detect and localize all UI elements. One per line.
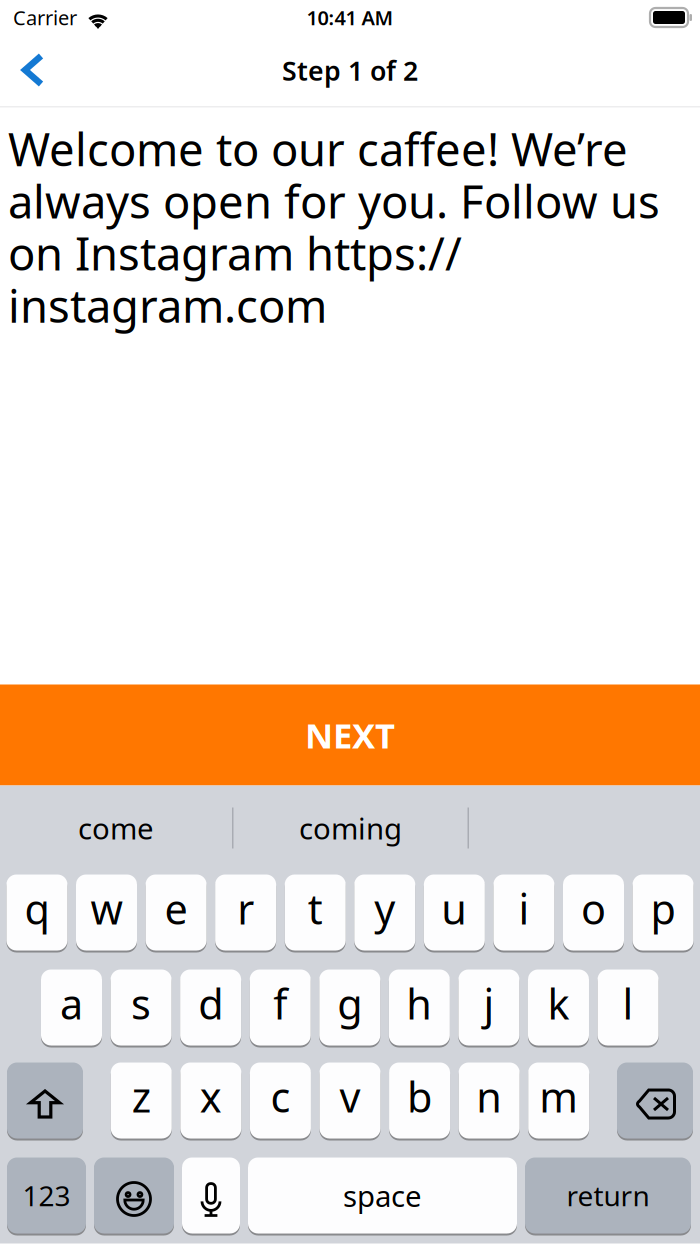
staticText: z — [132, 1069, 151, 1124]
button[interactable]: NEXT — [0, 684, 700, 785]
button[interactable]: coming — [233, 785, 467, 870]
staticText: i — [518, 881, 529, 936]
staticText: space — [343, 1176, 422, 1215]
button[interactable]: u — [424, 874, 485, 952]
button[interactable]: y — [354, 874, 415, 952]
button[interactable]: g — [319, 969, 380, 1047]
button[interactable]: come — [0, 785, 232, 870]
staticText: r — [237, 881, 254, 936]
staticText: u — [441, 881, 467, 936]
staticText: d — [198, 976, 223, 1031]
button[interactable]: i — [493, 874, 554, 952]
staticText: j — [483, 976, 494, 1031]
staticText: Carrier — [13, 4, 77, 31]
button[interactable]: z — [111, 1062, 172, 1140]
staticText: Welcome to our caffee! We’re always open… — [8, 118, 660, 335]
staticText: h — [406, 976, 432, 1031]
button[interactable]: return — [525, 1157, 691, 1235]
button[interactable]: j — [458, 969, 519, 1047]
staticText: y — [374, 881, 395, 936]
staticText: n — [476, 1069, 502, 1124]
staticText: a — [60, 976, 83, 1031]
button[interactable]: w — [76, 874, 137, 952]
staticText: p — [651, 881, 676, 936]
button[interactable]: Delete — [617, 1062, 693, 1140]
button[interactable]: space — [248, 1157, 517, 1235]
staticText: w — [90, 881, 122, 936]
button[interactable]: h — [389, 969, 450, 1047]
staticText: return — [566, 1177, 649, 1214]
staticText: 10:41 AM — [306, 4, 393, 31]
button[interactable]: s — [111, 969, 172, 1047]
button[interactable]: v — [319, 1062, 380, 1140]
button[interactable]: t — [285, 874, 346, 952]
button[interactable]: 123 — [7, 1157, 86, 1235]
staticText: s — [131, 976, 151, 1031]
button[interactable]: a — [41, 969, 102, 1047]
button[interactable]: f — [250, 969, 311, 1047]
button[interactable]: Shift — [7, 1062, 83, 1140]
staticText: c — [270, 1069, 290, 1124]
button[interactable]: d — [180, 969, 241, 1047]
button[interactable]: r — [215, 874, 276, 952]
button[interactable]: Emoji — [94, 1157, 174, 1235]
staticText: 123 — [22, 1177, 70, 1214]
button[interactable]: k — [528, 969, 589, 1047]
staticText: b — [407, 1069, 432, 1124]
staticText: v — [339, 1069, 360, 1124]
staticText: x — [200, 1069, 222, 1124]
staticText: l — [623, 976, 634, 1031]
button[interactable]: p — [633, 874, 694, 952]
staticText: m — [539, 1069, 578, 1124]
button[interactable]: m — [528, 1062, 589, 1140]
staticText: k — [547, 976, 569, 1031]
staticText: g — [337, 976, 362, 1031]
button[interactable]: b — [389, 1062, 450, 1140]
staticText: come — [78, 808, 154, 847]
button[interactable]: o — [563, 874, 624, 952]
staticText: e — [165, 881, 188, 936]
button[interactable]: e — [146, 874, 207, 952]
button[interactable]: n — [459, 1062, 520, 1140]
button[interactable]: x — [180, 1062, 241, 1140]
staticText: Step 1 of 2 — [282, 53, 418, 88]
staticText: q — [24, 881, 49, 936]
staticText: NEXT — [305, 712, 395, 758]
button[interactable]: c — [250, 1062, 311, 1140]
staticText: t — [308, 881, 323, 936]
button[interactable]: l — [598, 969, 659, 1047]
staticText: o — [581, 881, 606, 936]
button[interactable]: q — [6, 874, 67, 952]
staticText: f — [273, 976, 287, 1031]
button[interactable]: Back — [0, 47, 68, 105]
staticText: coming — [299, 808, 402, 847]
button[interactable]: Dictation — [182, 1157, 240, 1235]
